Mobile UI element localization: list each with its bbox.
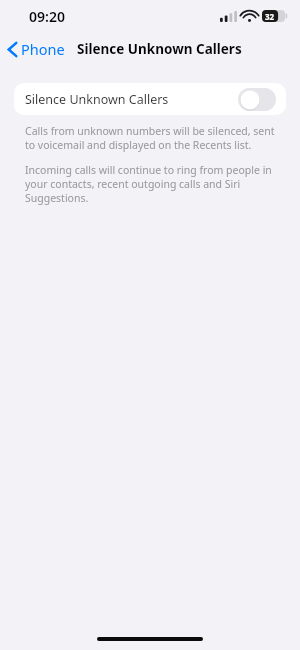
staticText: Silence Unknown Callers [25,91,169,108]
button[interactable]: Phone [0,35,71,63]
button[interactable]: Silence Unknown Callers toggle, off [238,88,276,111]
staticText: Calls from unknown numbers will be silen… [25,124,275,152]
staticText: Incoming calls will continue to ring fro… [25,163,275,205]
staticText: 09:20 [29,7,65,26]
staticText: Phone [21,39,65,59]
button[interactable]: Silence Unknown Callers [14,83,286,115]
staticText: Silence Unknown Callers [77,40,242,58]
staticText: 32 [265,11,275,22]
